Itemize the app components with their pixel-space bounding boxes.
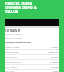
staticText: OWNER INFORMATION	[5, 41, 32, 44]
button[interactable]: Improvements	[5, 60, 59, 65]
button[interactable]: Total Value	[5, 65, 59, 70]
staticText: Land Value	[5, 56, 17, 59]
button[interactable]: Land Value	[5, 55, 59, 60]
staticText: Austin, TX 78701	[5, 33, 22, 36]
staticText: Improvements	[5, 61, 21, 64]
staticText: J. Smith	[50, 46, 59, 49]
staticText: Tax Year	[5, 70, 14, 72]
staticText: 165,000	[50, 66, 59, 69]
staticText: 123 MAIN ST	[5, 29, 21, 32]
staticText: PARCEL DATA OWNER INFO & VALUE	[5, 1, 37, 14]
staticText: Parcel 0123-456	[5, 37, 22, 40]
staticText: 120,000	[50, 61, 59, 64]
staticText: Total Value	[5, 66, 17, 69]
button[interactable]: Tax Year	[5, 70, 59, 72]
staticText: Mailing Addr	[5, 51, 19, 54]
staticText: 45,000	[51, 56, 59, 59]
staticText: 2024	[53, 70, 59, 72]
staticText: Owner Name	[5, 46, 20, 49]
button[interactable]: Mailing Addr	[5, 50, 59, 55]
staticText: Austin TX	[48, 51, 59, 54]
button[interactable]: Owner Name	[5, 45, 59, 50]
